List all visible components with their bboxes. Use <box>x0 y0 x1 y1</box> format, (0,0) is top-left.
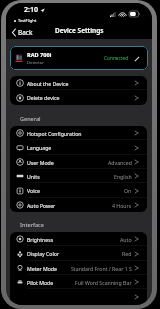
staticText: RAD 700i <box>27 51 52 59</box>
button[interactable]: Pilot Mode <box>10 275 147 289</box>
button[interactable]: Auto Power <box>10 198 147 212</box>
button[interactable] <box>10 289 147 305</box>
button[interactable]: Back <box>6 26 39 39</box>
staticText: Detector <box>27 60 45 66</box>
staticText: 2:10 <box>24 5 38 15</box>
button[interactable]: Language <box>10 140 147 155</box>
button[interactable]: Voice <box>10 183 147 198</box>
staticText: Red <box>122 250 132 257</box>
staticText: On <box>124 187 132 194</box>
staticText: Auto Power <box>27 202 56 209</box>
staticText: TestFlight <box>18 18 37 23</box>
staticText: Display Color <box>27 250 60 257</box>
staticText: Back <box>18 28 33 37</box>
staticText: 4 Hours <box>112 202 132 209</box>
staticText: Connected <box>104 55 129 62</box>
button[interactable]: RAD 700i <box>10 46 148 70</box>
staticText: Device Settings <box>55 26 104 35</box>
staticText: Advanced <box>108 159 132 166</box>
button[interactable]: Brightness <box>10 232 147 246</box>
button[interactable]: About the Device <box>10 76 147 90</box>
staticText: Full Word Scanning Bar <box>75 279 132 286</box>
button[interactable]: Delete device <box>10 90 147 105</box>
staticText: Pilot Mode <box>27 279 54 286</box>
staticText: Auto <box>120 236 132 243</box>
staticText: Standard Front / Rear 1 S <box>71 265 132 272</box>
staticText: Language <box>27 144 52 151</box>
staticText: Voice <box>27 187 40 194</box>
staticText: Delete device <box>27 94 60 101</box>
staticText: User Mode <box>27 159 54 166</box>
button[interactable]: Display Color <box>10 246 147 261</box>
button[interactable]: Units <box>10 169 147 183</box>
button[interactable]: Meter Mode <box>10 261 147 275</box>
button[interactable]: User Mode <box>10 155 147 169</box>
staticText: Meter Mode <box>27 265 57 272</box>
staticText: Hotspot Configuration <box>27 130 82 137</box>
staticText: Interface <box>20 221 44 228</box>
staticText: Brightness <box>27 236 54 243</box>
button[interactable]: Hotspot Configuration <box>10 126 147 140</box>
staticText: Units <box>27 173 40 180</box>
staticText: English <box>114 173 132 180</box>
staticText: General <box>20 115 41 122</box>
button[interactable]: Edit device name <box>133 55 140 62</box>
staticText: About the Device <box>27 80 69 87</box>
